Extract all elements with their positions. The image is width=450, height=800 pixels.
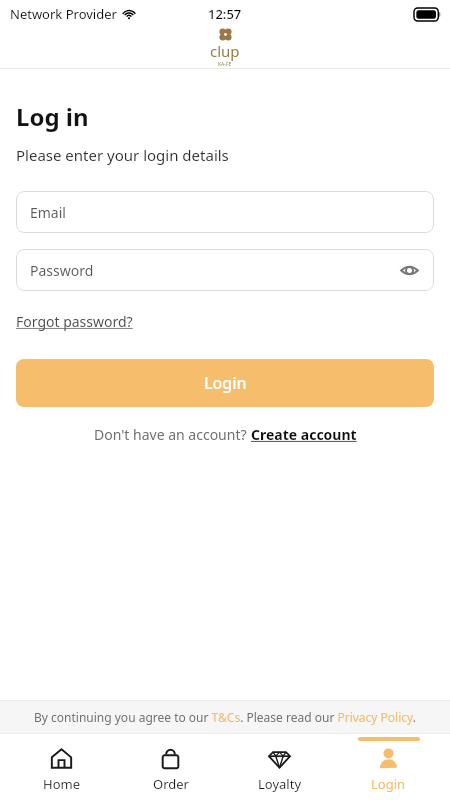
staticText: Login (204, 372, 247, 394)
staticText: Login (371, 775, 406, 793)
staticText: Password (30, 261, 94, 280)
staticText: Please enter your login details (16, 145, 229, 165)
button[interactable]: Password (16, 249, 434, 291)
button[interactable]: Forgot password? (16, 310, 133, 333)
button[interactable]: Login (341, 734, 436, 800)
staticText: Order (153, 775, 189, 793)
button[interactable]: Email (16, 191, 434, 233)
button[interactable]: Show password (396, 257, 422, 283)
staticText: Create account (251, 425, 357, 444)
staticText: KA-FE (218, 61, 232, 68)
staticText: Log in (16, 100, 89, 133)
staticText: 12:57 (208, 5, 242, 23)
button[interactable]: Create account (251, 425, 357, 444)
staticText: By continuing you agree to our T&Cs. Ple… (34, 709, 416, 725)
staticText: Home (43, 775, 80, 793)
staticText: Email (30, 203, 66, 222)
staticText: Network Provider (10, 5, 117, 23)
staticText: Don't have an account? (94, 425, 251, 444)
staticText: clup (210, 41, 240, 61)
button[interactable]: Login (16, 359, 434, 407)
button[interactable]: Order (123, 734, 218, 800)
button[interactable]: Home (14, 734, 109, 800)
staticText: Forgot password? (16, 312, 133, 331)
staticText: Loyalty (258, 775, 302, 793)
button[interactable]: Loyalty (232, 734, 327, 800)
